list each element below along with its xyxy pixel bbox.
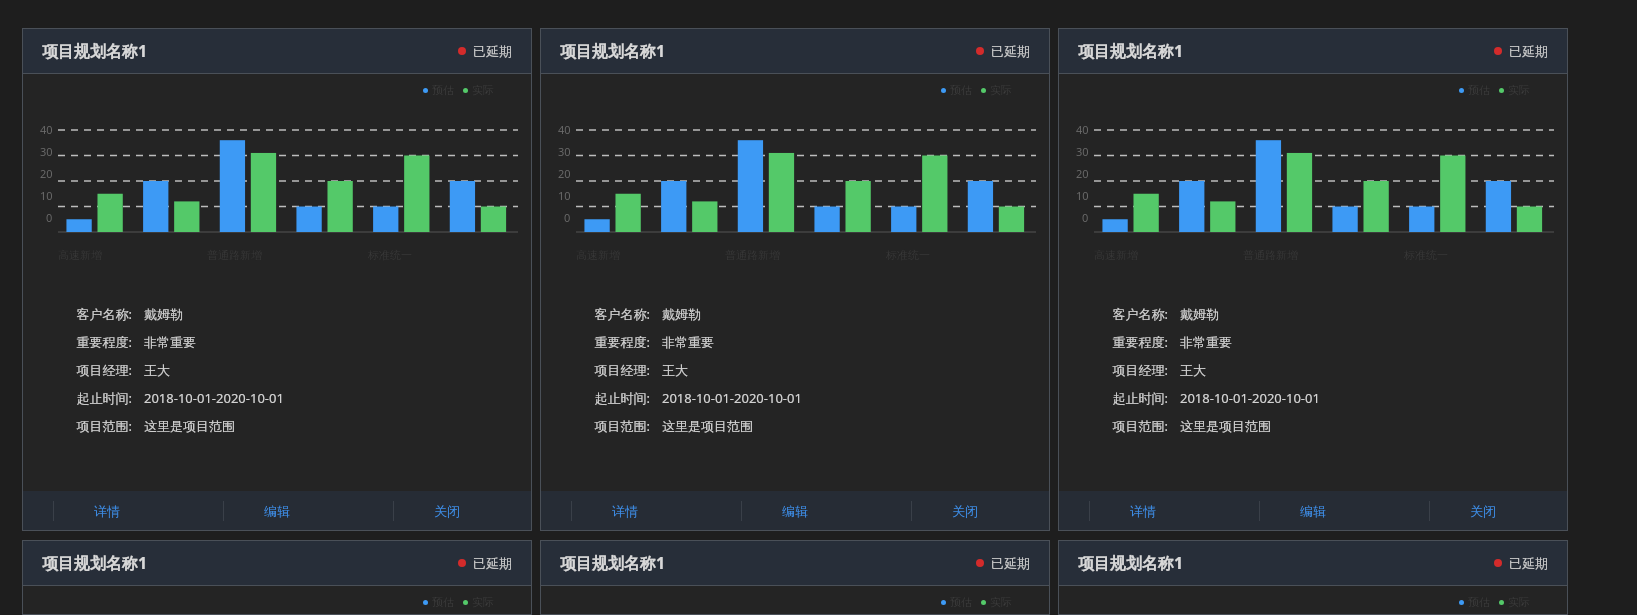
staticText: 10 bbox=[1076, 188, 1089, 203]
staticText: 高速新增 bbox=[1094, 248, 1138, 262]
staticText: 项目规划名称1 bbox=[42, 552, 148, 574]
staticText: 实际 bbox=[472, 595, 494, 609]
staticText: 预估 bbox=[950, 595, 972, 609]
staticText: 10 bbox=[40, 188, 53, 203]
staticText: 普通路新增 bbox=[1243, 248, 1298, 262]
staticText: 王大 bbox=[1180, 362, 1206, 378]
staticText: 客户名称: bbox=[550, 305, 650, 323]
staticText: 项目规划名称1 bbox=[560, 552, 666, 574]
staticText: 这里是项目范围 bbox=[1180, 418, 1271, 434]
button[interactable]: 详情 bbox=[22, 491, 192, 531]
staticText: 预估 bbox=[432, 595, 454, 609]
staticText: 20 bbox=[558, 166, 571, 181]
staticText: 项目规划名称1 bbox=[1078, 552, 1184, 574]
staticText: 实际 bbox=[1508, 595, 1530, 609]
staticText: 起止时间: bbox=[32, 389, 132, 407]
staticText: 预估 bbox=[1468, 595, 1490, 609]
staticText: 项目规划名称1 bbox=[1078, 40, 1184, 62]
staticText: 0 bbox=[46, 210, 53, 225]
staticText: 重要程度: bbox=[550, 333, 650, 351]
button[interactable]: 项目规划名称1 bbox=[540, 28, 1050, 73]
staticText: 编辑 bbox=[264, 503, 290, 519]
staticText: 0 bbox=[1082, 210, 1089, 225]
staticText: 实际 bbox=[472, 83, 494, 97]
staticText: 已延期 bbox=[1509, 43, 1548, 59]
staticText: 2018-10-01-2020-10-01 bbox=[662, 389, 802, 407]
staticText: 戴姆勒 bbox=[662, 306, 701, 322]
staticText: 30 bbox=[558, 144, 571, 159]
staticText: 30 bbox=[1076, 144, 1089, 159]
staticText: 已延期 bbox=[1509, 555, 1548, 571]
staticText: 已延期 bbox=[991, 43, 1030, 59]
staticText: 标准统一 bbox=[1404, 248, 1448, 262]
staticText: 普通路新增 bbox=[725, 248, 780, 262]
staticText: 普通路新增 bbox=[207, 248, 262, 262]
button[interactable]: 项目规划名称1 bbox=[22, 540, 532, 585]
staticText: 预估 bbox=[950, 83, 972, 97]
staticText: 项目经理: bbox=[32, 361, 132, 379]
button[interactable]: 关闭 bbox=[362, 491, 532, 531]
staticText: 项目范围: bbox=[32, 417, 132, 435]
button[interactable]: 详情 bbox=[540, 491, 710, 531]
staticText: 这里是项目范围 bbox=[144, 418, 235, 434]
staticText: 关闭 bbox=[952, 503, 978, 519]
staticText: 2018-10-01-2020-10-01 bbox=[1180, 389, 1320, 407]
staticText: 关闭 bbox=[434, 503, 460, 519]
staticText: 非常重要 bbox=[1180, 334, 1232, 350]
staticText: 高速新增 bbox=[576, 248, 620, 262]
staticText: 非常重要 bbox=[662, 334, 714, 350]
staticText: 高速新增 bbox=[58, 248, 102, 262]
staticText: 关闭 bbox=[1470, 503, 1496, 519]
staticText: 王大 bbox=[662, 362, 688, 378]
staticText: 客户名称: bbox=[32, 305, 132, 323]
staticText: 详情 bbox=[1130, 503, 1156, 519]
staticText: 实际 bbox=[990, 595, 1012, 609]
button[interactable]: 项目规划名称1 bbox=[22, 28, 532, 73]
button[interactable]: 项目规划名称1 bbox=[540, 540, 1050, 585]
button[interactable]: 详情 bbox=[1058, 491, 1228, 531]
button[interactable]: 编辑 bbox=[192, 491, 362, 531]
button[interactable]: 编辑 bbox=[710, 491, 880, 531]
staticText: 重要程度: bbox=[32, 333, 132, 351]
staticText: 已延期 bbox=[473, 555, 512, 571]
staticText: 戴姆勒 bbox=[144, 306, 183, 322]
staticText: 非常重要 bbox=[144, 334, 196, 350]
staticText: 详情 bbox=[612, 503, 638, 519]
staticText: 20 bbox=[40, 166, 53, 181]
staticText: 标准统一 bbox=[886, 248, 930, 262]
staticText: 40 bbox=[1076, 122, 1089, 137]
staticText: 预估 bbox=[432, 83, 454, 97]
staticText: 项目经理: bbox=[1068, 361, 1168, 379]
staticText: 编辑 bbox=[782, 503, 808, 519]
staticText: 起止时间: bbox=[1068, 389, 1168, 407]
staticText: 已延期 bbox=[991, 555, 1030, 571]
staticText: 项目范围: bbox=[550, 417, 650, 435]
staticText: 实际 bbox=[1508, 83, 1530, 97]
button[interactable]: 项目规划名称1 bbox=[1058, 28, 1568, 73]
staticText: 10 bbox=[558, 188, 571, 203]
button[interactable]: 关闭 bbox=[1398, 491, 1568, 531]
staticText: 预估 bbox=[1468, 83, 1490, 97]
button[interactable]: 项目规划名称1 bbox=[1058, 540, 1568, 585]
staticText: 客户名称: bbox=[1068, 305, 1168, 323]
staticText: 20 bbox=[1076, 166, 1089, 181]
staticText: 标准统一 bbox=[368, 248, 412, 262]
staticText: 重要程度: bbox=[1068, 333, 1168, 351]
staticText: 40 bbox=[558, 122, 571, 137]
staticText: 30 bbox=[40, 144, 53, 159]
staticText: 实际 bbox=[990, 83, 1012, 97]
staticText: 项目规划名称1 bbox=[42, 40, 148, 62]
staticText: 项目范围: bbox=[1068, 417, 1168, 435]
staticText: 0 bbox=[564, 210, 571, 225]
button[interactable]: 编辑 bbox=[1228, 491, 1398, 531]
staticText: 已延期 bbox=[473, 43, 512, 59]
staticText: 项目规划名称1 bbox=[560, 40, 666, 62]
staticText: 起止时间: bbox=[550, 389, 650, 407]
staticText: 2018-10-01-2020-10-01 bbox=[144, 389, 284, 407]
button[interactable]: 关闭 bbox=[880, 491, 1050, 531]
staticText: 项目经理: bbox=[550, 361, 650, 379]
staticText: 王大 bbox=[144, 362, 170, 378]
staticText: 戴姆勒 bbox=[1180, 306, 1219, 322]
staticText: 编辑 bbox=[1300, 503, 1326, 519]
staticText: 详情 bbox=[94, 503, 120, 519]
